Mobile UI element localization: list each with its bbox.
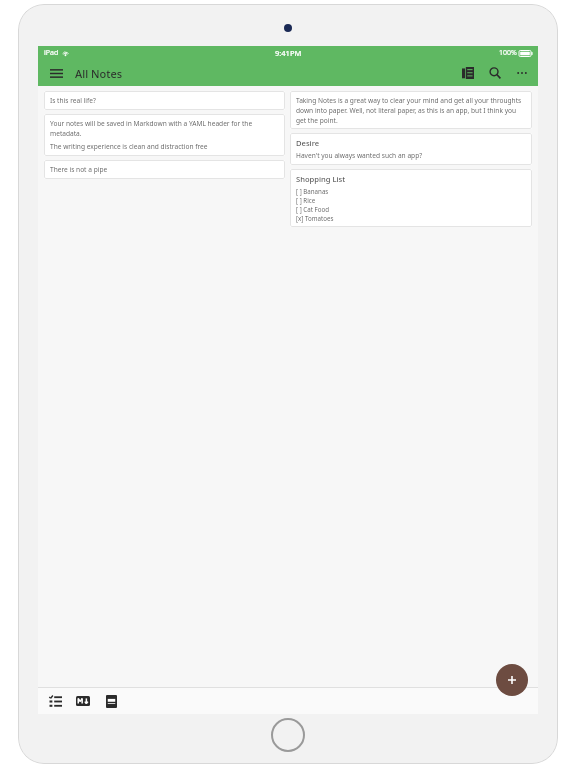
button[interactable]: Insert checklist [44,690,66,712]
button[interactable]: Your notes will be saved in Markdown wit… [44,114,285,156]
staticText: iPad [44,48,59,58]
button[interactable]: Desire [290,133,532,165]
staticText: 100% [499,48,517,58]
staticText: All Notes [75,66,123,81]
button[interactable]: More options [512,63,532,83]
button[interactable]: Shopping List [290,169,532,227]
button[interactable]: Open navigation menu [46,63,66,83]
button[interactable]: New note [496,664,528,696]
staticText: There is not a pipe [50,165,108,174]
staticText: [ ] Rice [296,196,316,204]
button[interactable]: Notebooks [458,63,478,83]
button[interactable]: Notebook [100,690,122,712]
button[interactable]: Is this real life? [44,91,285,110]
staticText: 9:41PM [275,48,302,58]
staticText: [ ] Bananas [296,187,329,195]
staticText: [ ] Cat Food [296,205,330,213]
staticText: [x] Tomatoes [296,214,334,222]
button[interactable]: Search [485,63,505,83]
button[interactable]: There is not a pipe [44,160,285,179]
staticText: Shopping List [296,174,346,184]
staticText: The writing experience is clean and dist… [50,142,208,151]
staticText: Desire [296,138,320,148]
button[interactable]: Taking Notes is a great way to clear you… [290,91,532,129]
staticText: Haven't you always wanted such an app? [296,151,423,160]
button[interactable]: Markdown preview [72,690,94,712]
staticText: Is this real life? [50,96,96,105]
staticText: Your notes will be saved in Markdown wit… [50,119,279,137]
staticText: Taking Notes is a great way to clear you… [296,96,526,124]
